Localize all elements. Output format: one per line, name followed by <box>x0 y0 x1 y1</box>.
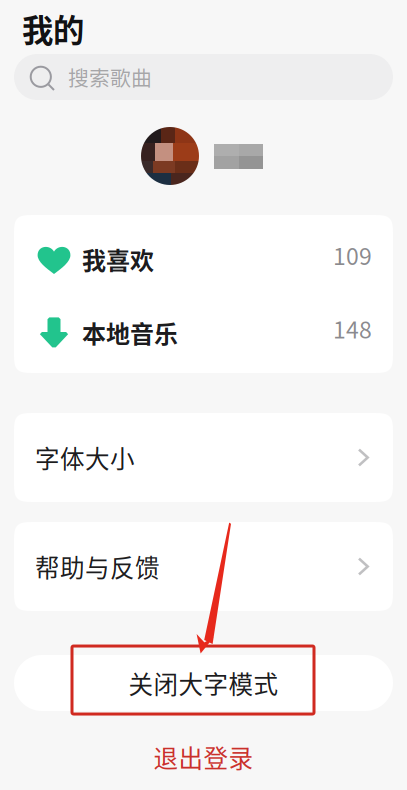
staticText: 退出登录 <box>153 739 253 775</box>
button[interactable]: 搜索歌曲 <box>14 54 393 100</box>
staticText: 关闭大字模式 <box>128 665 278 701</box>
staticText: 148 <box>333 312 372 345</box>
button[interactable]: 字体大小 <box>14 413 393 502</box>
button[interactable]: 我喜欢 <box>14 239 393 279</box>
staticText: 搜索歌曲 <box>68 62 152 92</box>
staticText: 我的 <box>22 6 84 51</box>
button[interactable]: 帮助与反馈 <box>14 522 393 611</box>
staticText: 字体大小 <box>35 440 135 475</box>
staticText: 109 <box>333 238 372 272</box>
button[interactable]: 关闭大字模式 <box>14 655 393 711</box>
staticText: 我喜欢 <box>82 242 154 276</box>
button[interactable]: 本地音乐 <box>14 312 393 352</box>
button[interactable]: 退出登录 <box>14 736 393 778</box>
staticText: 本地音乐 <box>82 315 178 350</box>
staticText: 帮助与反馈 <box>35 549 160 584</box>
